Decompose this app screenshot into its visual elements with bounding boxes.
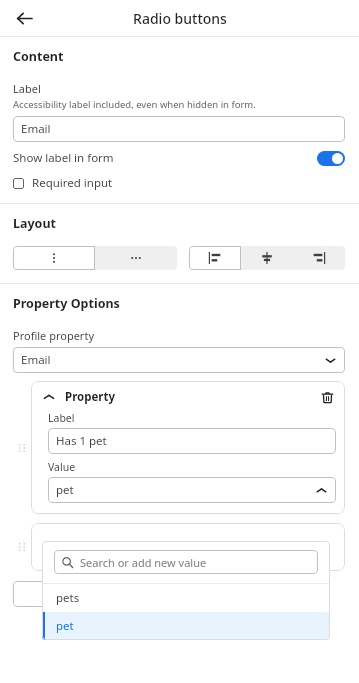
staticText: Email (21, 121, 337, 137)
button[interactable]: Email (13, 347, 345, 373)
button[interactable] (31, 523, 345, 571)
staticText: Required input (32, 175, 113, 191)
staticText: pet (56, 618, 74, 634)
button[interactable]: Has 1 pet (48, 428, 336, 454)
staticText: Value (48, 460, 76, 474)
button[interactable]: pets (42, 584, 330, 612)
button[interactable]: pet (48, 477, 336, 503)
button[interactable]: Delete property (318, 388, 336, 406)
staticText: Radio buttons (133, 9, 227, 28)
staticText: Show label in form (13, 150, 317, 166)
staticText: Email (21, 352, 324, 368)
staticText: Label (48, 411, 75, 425)
staticText: Has 1 pet (56, 433, 328, 449)
button[interactable]: Horizontal layout (95, 246, 177, 270)
button[interactable]: Property (40, 388, 336, 406)
staticText: Property (65, 389, 318, 405)
button[interactable]: Back (10, 4, 38, 32)
button[interactable]: Align right (293, 246, 345, 270)
staticText: Search or add new value (80, 555, 207, 570)
staticText: pet (56, 482, 315, 498)
staticText: Property Options (13, 295, 120, 312)
staticText: pets (56, 590, 80, 606)
button[interactable]: Required input (13, 175, 113, 191)
staticText: Accessibility label included, even when … (13, 98, 256, 111)
button[interactable]: Vertical layout (13, 246, 95, 270)
button[interactable]: Align center (241, 246, 293, 270)
button[interactable]: Email (13, 116, 345, 142)
staticText: Content (13, 48, 64, 65)
staticText: Label (13, 81, 41, 96)
button[interactable]: Search or add new value (54, 550, 318, 574)
staticText: Add a Property (63, 586, 146, 602)
button[interactable]: pet (42, 612, 330, 640)
button[interactable]: Align left (189, 246, 241, 270)
button[interactable]: Show label in form (13, 150, 345, 166)
staticText: Profile property (13, 328, 94, 343)
button[interactable]: Add a Property (13, 581, 178, 607)
staticText: Layout (13, 215, 56, 232)
